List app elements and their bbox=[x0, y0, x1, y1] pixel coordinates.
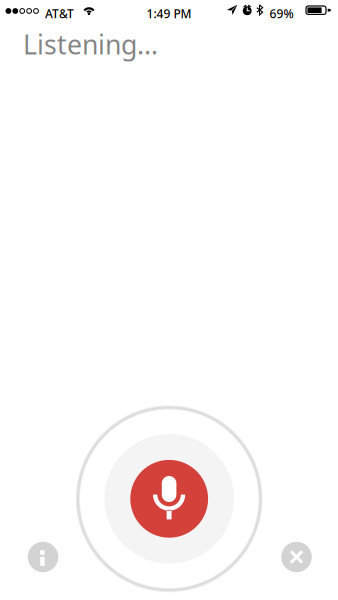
button[interactable]: Close bbox=[274, 535, 318, 579]
button[interactable]: Stop listening bbox=[129, 459, 209, 539]
staticText: Listening… bbox=[23, 26, 158, 62]
staticText: 1:49 PM bbox=[146, 6, 191, 21]
staticText: 69% bbox=[269, 6, 293, 21]
button[interactable]: Info bbox=[21, 535, 65, 579]
staticText: AT&T bbox=[45, 6, 74, 21]
